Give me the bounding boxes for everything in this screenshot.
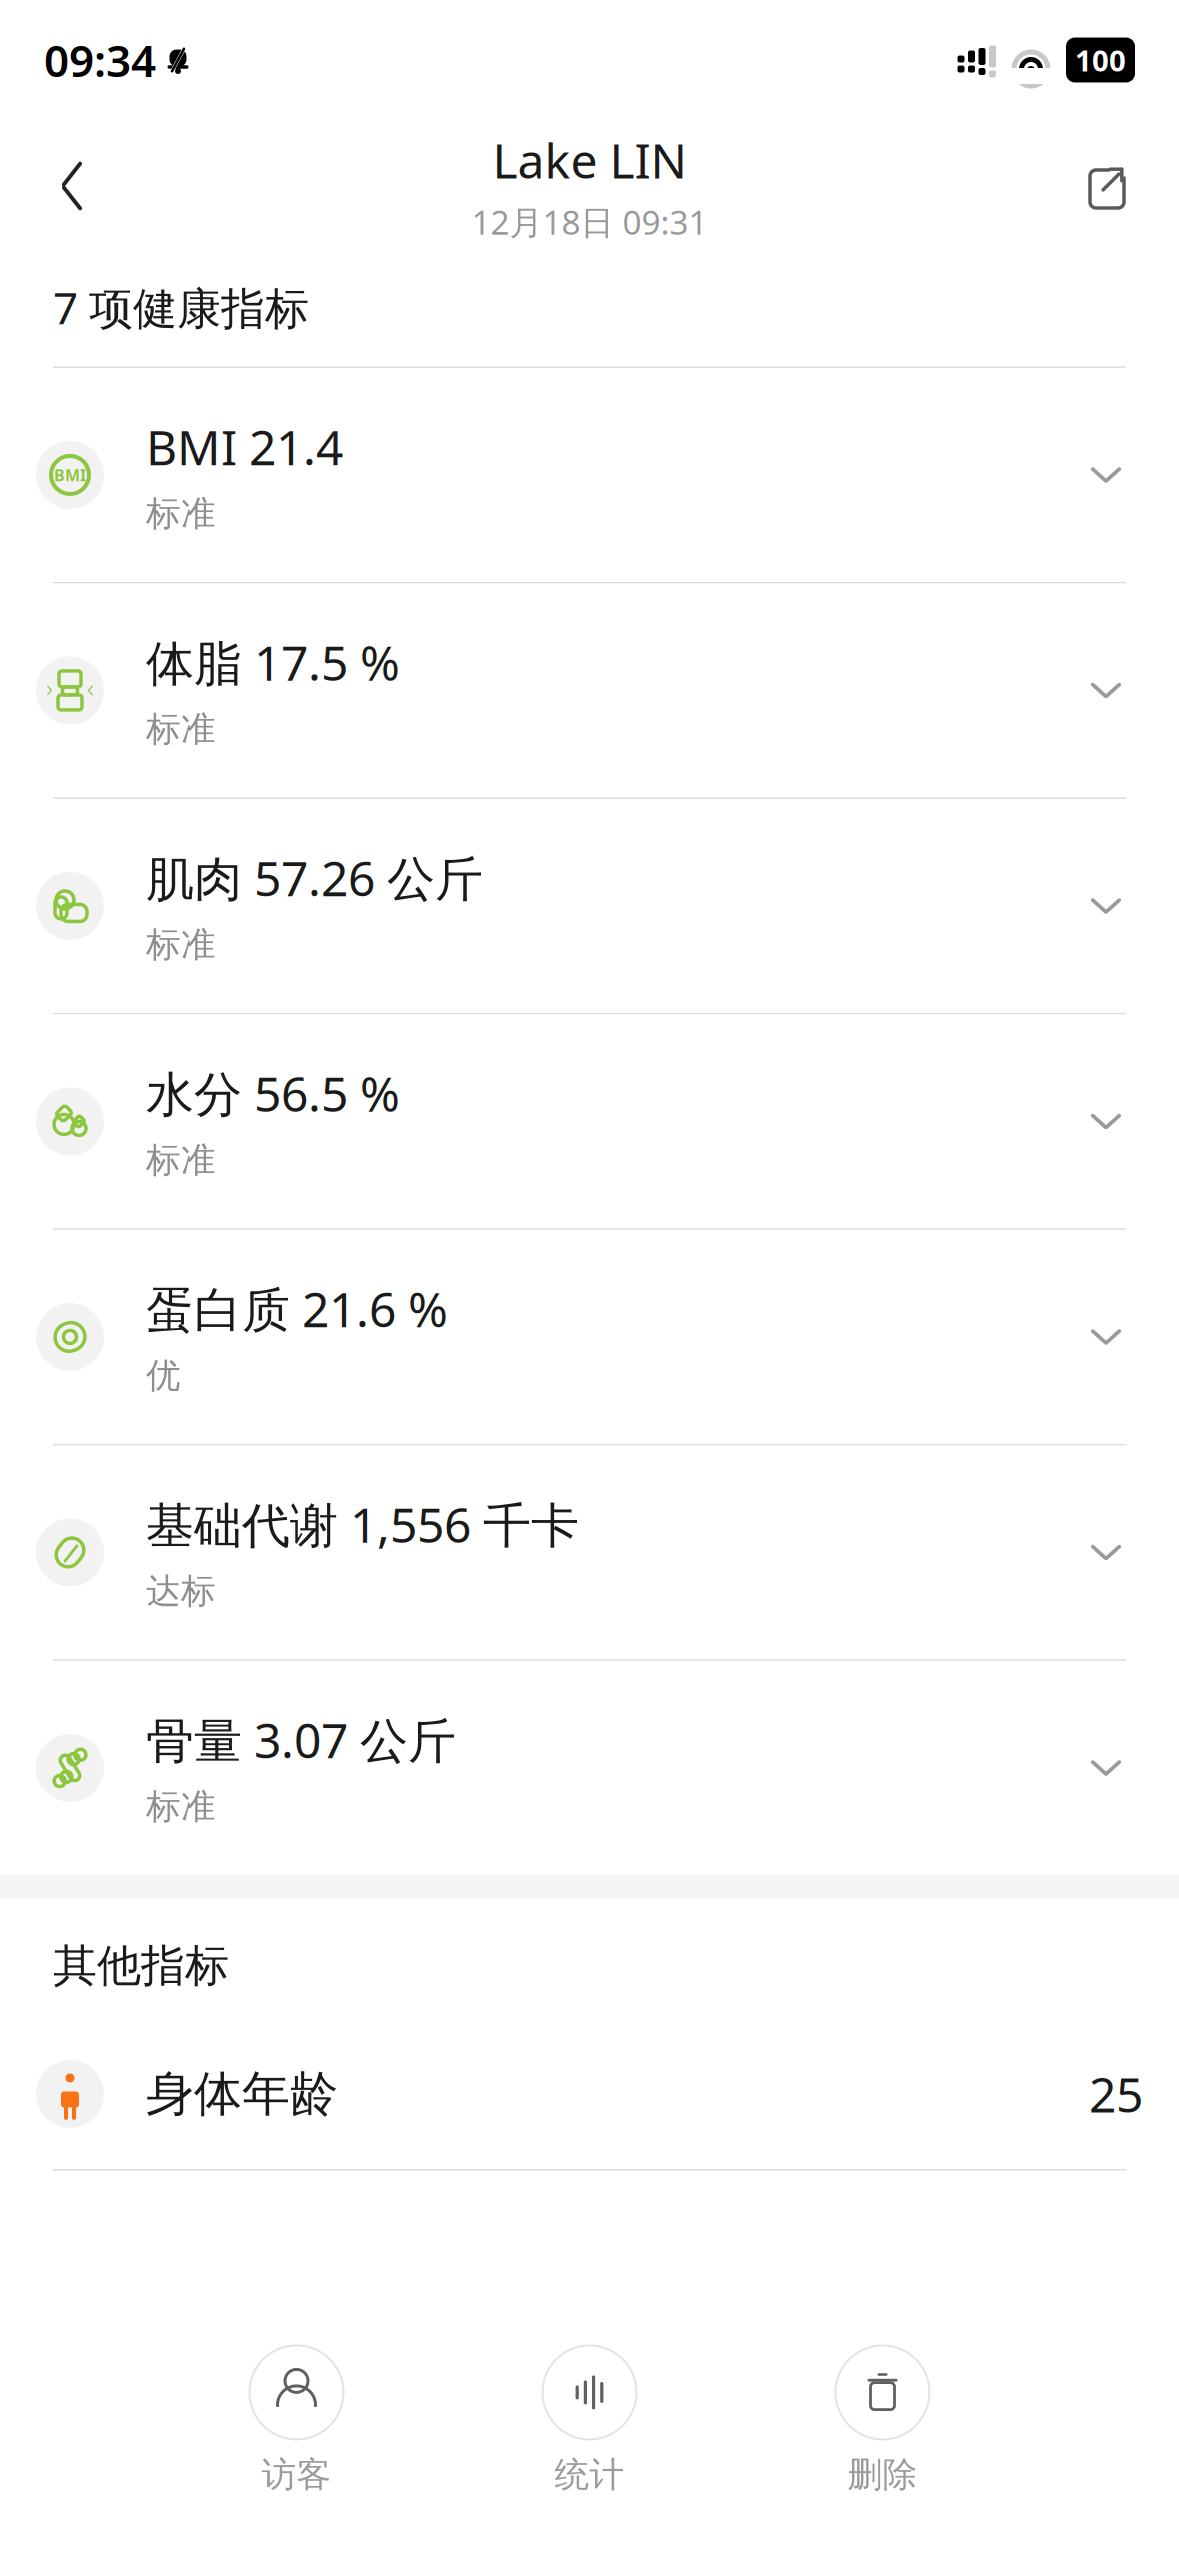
- staticText: BMI: [54, 464, 86, 485]
- staticText: 基础代谢 1,556 千卡: [146, 1492, 579, 1556]
- button[interactable]: 统计: [443, 2345, 736, 2496]
- button[interactable]: Back: [26, 140, 118, 232]
- staticText: 标准: [146, 492, 216, 535]
- button[interactable]: 基础代谢 1,556 千卡: [0, 1445, 1179, 1659]
- staticText: 统计: [554, 2453, 624, 2496]
- staticText: 12月18日 09:31: [471, 200, 707, 244]
- button[interactable]: 蛋白质 21.6 %: [0, 1230, 1179, 1444]
- button[interactable]: 访客: [150, 2345, 443, 2496]
- staticText: 25: [1089, 2062, 1143, 2126]
- staticText: 7 项健康指标: [53, 278, 309, 336]
- button[interactable]: BMI: [0, 368, 1179, 582]
- button[interactable]: 身体年龄: [0, 2019, 1179, 2169]
- staticText: 访客: [261, 2453, 331, 2496]
- staticText: Lake LIN: [492, 128, 686, 192]
- staticText: 优: [146, 1354, 181, 1397]
- staticText: 骨量 3.07 公斤: [146, 1708, 456, 1771]
- staticText: 标准: [146, 708, 216, 751]
- staticText: 其他指标: [53, 1939, 229, 1993]
- staticText: 标准: [146, 1139, 216, 1182]
- staticText: 达标: [146, 1570, 216, 1613]
- button[interactable]: 骨量 3.07 公斤: [0, 1661, 1179, 1875]
- staticText: 标准: [146, 1785, 216, 1828]
- staticText: 蛋白质 21.6 %: [146, 1277, 448, 1340]
- staticText: 水分 56.5 %: [146, 1061, 400, 1125]
- button[interactable]: 肌肉 57.26 公斤: [0, 799, 1179, 1013]
- staticText: BMI 21.4: [146, 415, 343, 478]
- staticText: 09:34: [44, 31, 156, 89]
- button[interactable]: Share: [1061, 140, 1153, 232]
- staticText: 标准: [146, 923, 216, 966]
- staticText: 体脂 17.5 %: [146, 630, 400, 694]
- staticText: 删除: [847, 2453, 917, 2496]
- button[interactable]: 体脂 17.5 %: [0, 583, 1179, 797]
- staticText: 100: [1075, 40, 1126, 79]
- button[interactable]: 水分 56.5 %: [0, 1014, 1179, 1228]
- staticText: 身体年龄: [146, 2064, 338, 2123]
- staticText: 肌肉 57.26 公斤: [146, 846, 483, 909]
- button[interactable]: 删除: [736, 2345, 1029, 2496]
